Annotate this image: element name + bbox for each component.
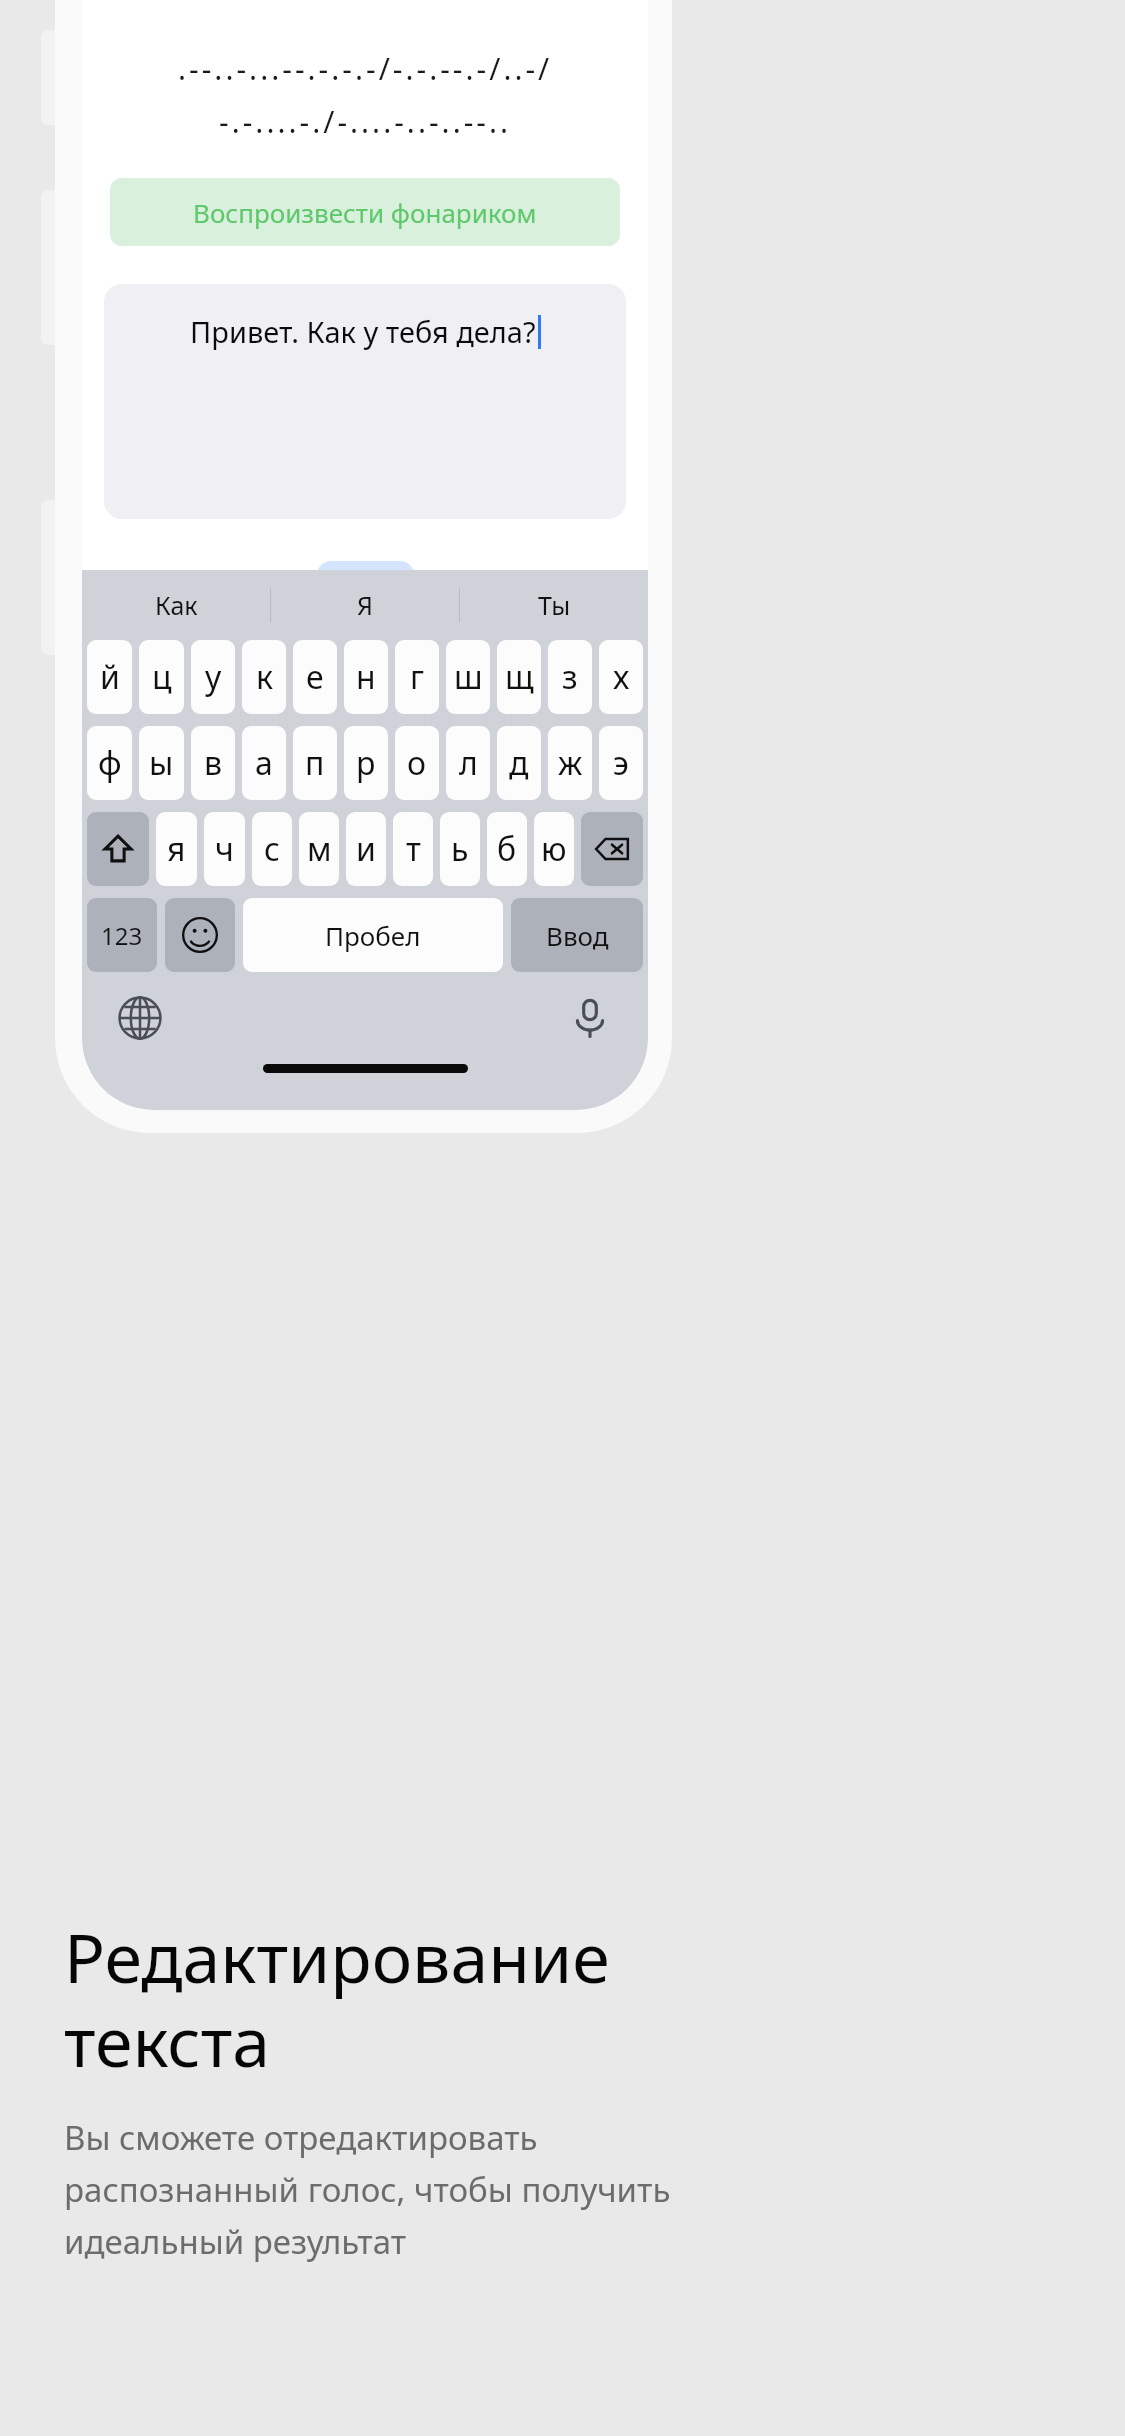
button[interactable]: ч (204, 812, 245, 886)
button[interactable]: и (346, 812, 386, 886)
button[interactable]: Клавиша (87, 812, 149, 886)
button[interactable]: Диктовка (562, 990, 618, 1046)
staticText: н (356, 655, 376, 699)
staticText: ы (149, 741, 174, 785)
staticText: с (264, 827, 280, 871)
staticText: Я (357, 588, 373, 622)
button[interactable]: Пробел (243, 898, 503, 972)
button[interactable]: т (393, 812, 433, 886)
staticText: й (100, 655, 120, 699)
button[interactable]: ю (534, 812, 574, 886)
staticText: у (205, 655, 222, 699)
button[interactable]: о (395, 726, 439, 800)
staticText: ц (152, 655, 172, 699)
staticText: .--..-...--.-.-.-/-.-.--.-/..-/ (178, 48, 553, 89)
button[interactable]: э (599, 726, 643, 800)
button[interactable]: ф (87, 726, 132, 800)
staticText: г (410, 655, 425, 699)
staticText: д (509, 741, 529, 785)
button[interactable]: ш (446, 640, 490, 714)
button[interactable]: г (395, 640, 439, 714)
staticText: э (613, 741, 629, 785)
staticText: ф (98, 741, 122, 785)
staticText: к (256, 655, 273, 699)
staticText: Ты (538, 588, 571, 622)
button[interactable]: м (299, 812, 339, 886)
staticText: щ (505, 655, 534, 699)
button[interactable]: к (242, 640, 286, 714)
button[interactable]: Ввод (511, 898, 643, 972)
button[interactable]: ы (139, 726, 184, 800)
staticText: 123 (101, 919, 143, 952)
button[interactable]: р (344, 726, 388, 800)
button[interactable]: щ (497, 640, 541, 714)
staticText: ж (558, 741, 583, 785)
staticText: я (167, 827, 186, 871)
staticText: е (306, 655, 324, 699)
staticText: х (613, 655, 630, 699)
staticText: ч (215, 827, 234, 871)
staticText: Ввод (546, 918, 609, 953)
button[interactable]: я (156, 812, 197, 886)
button[interactable]: Воспроизвести фонариком (110, 178, 620, 246)
button[interactable]: п (293, 726, 337, 800)
staticText: р (356, 741, 376, 785)
staticText: Пробел (325, 918, 421, 953)
staticText: б (497, 827, 517, 871)
staticText: в (204, 741, 223, 785)
staticText: Вы сможете отредактировать распознанный … (64, 2115, 671, 2263)
staticText: ь (451, 827, 469, 871)
button[interactable]: б (487, 812, 527, 886)
button[interactable]: Ты (460, 570, 648, 640)
button[interactable]: Как (82, 570, 270, 640)
staticText: п (305, 741, 325, 785)
staticText: Привет. Как у тебя дела? (190, 312, 536, 351)
button[interactable]: Сменить язык (112, 990, 168, 1046)
button[interactable]: а (242, 726, 286, 800)
staticText: -.-....-./-....-..-..--.. (219, 101, 512, 142)
button[interactable]: 123 (87, 898, 157, 972)
button[interactable]: й (87, 640, 132, 714)
button[interactable]: е (293, 640, 337, 714)
button[interactable]: з (548, 640, 592, 714)
staticText: и (356, 827, 376, 871)
button[interactable]: л (446, 726, 490, 800)
staticText: ю (541, 827, 567, 871)
staticText: ш (454, 655, 483, 699)
staticText: з (562, 655, 578, 699)
staticText: л (459, 741, 478, 785)
button[interactable]: в (191, 726, 235, 800)
button[interactable]: Клавиша (165, 898, 235, 972)
staticText: м (307, 827, 332, 871)
button[interactable]: Привет. Как у тебя дела? (104, 284, 626, 519)
button[interactable]: Клавиша (581, 812, 643, 886)
button[interactable]: у (191, 640, 235, 714)
button[interactable]: ц (139, 640, 184, 714)
button[interactable]: Записать голос (317, 561, 414, 661)
staticText: т (406, 827, 421, 871)
staticText: а (255, 741, 273, 785)
button[interactable]: Я (271, 570, 459, 640)
button[interactable]: х (599, 640, 643, 714)
staticText: о (407, 741, 427, 785)
button[interactable]: с (252, 812, 292, 886)
staticText: Воспроизвести фонариком (193, 195, 537, 230)
button[interactable]: ж (548, 726, 592, 800)
button[interactable]: н (344, 640, 388, 714)
staticText: Редактирование текста (64, 1910, 610, 2087)
staticText: Как (155, 588, 198, 622)
button[interactable]: ь (440, 812, 480, 886)
button[interactable]: д (497, 726, 541, 800)
